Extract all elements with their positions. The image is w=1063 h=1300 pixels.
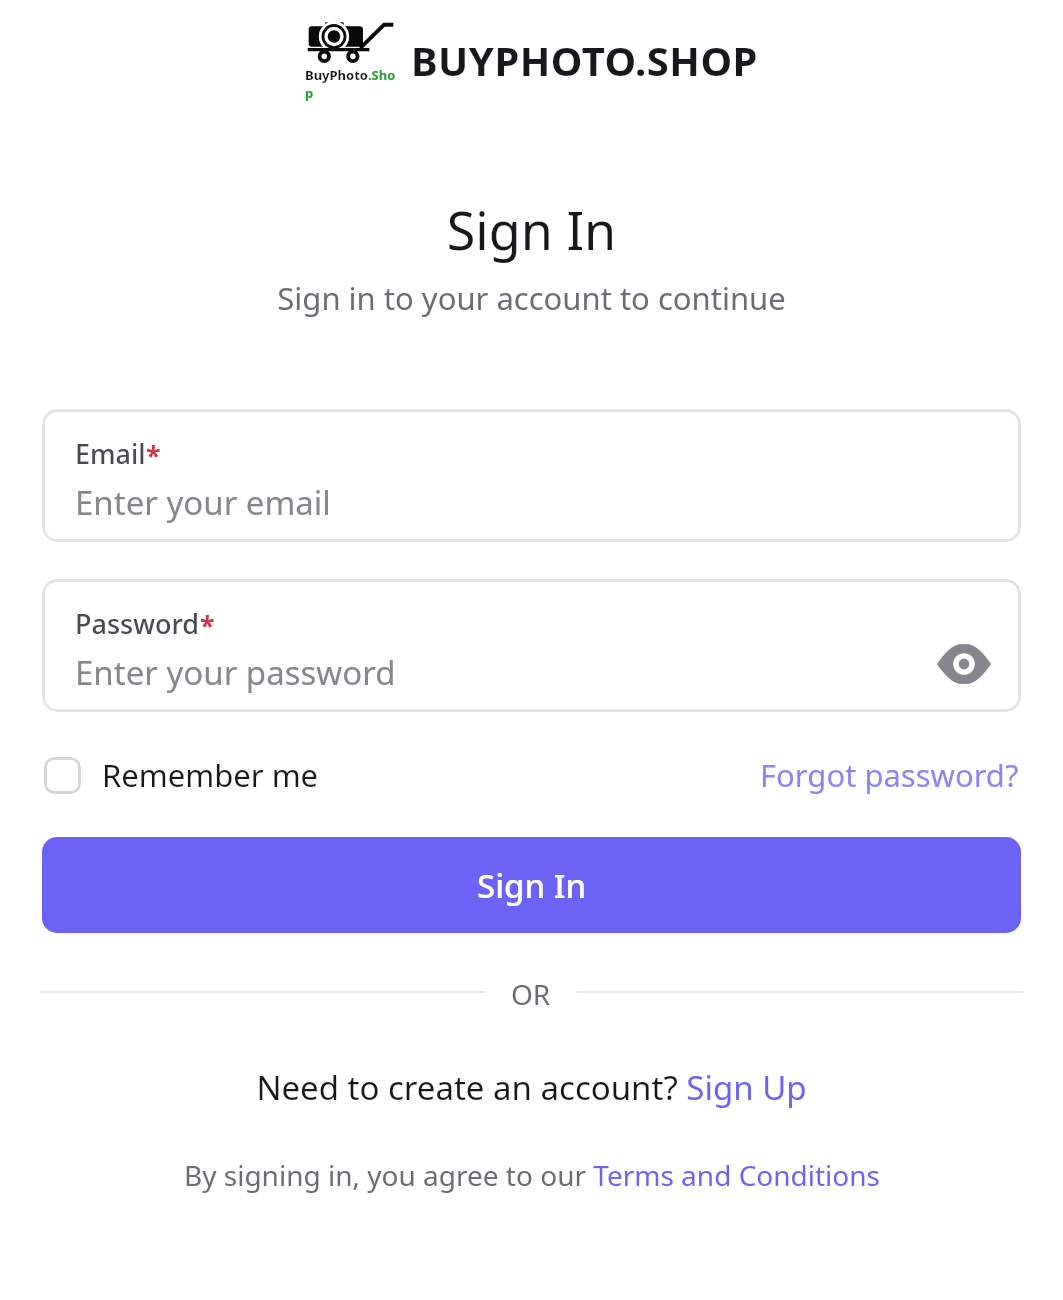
- button[interactable]: Password: [42, 579, 1021, 712]
- staticText: Enter your password: [75, 650, 396, 695]
- staticText: Forgot password?: [760, 754, 1019, 796]
- staticText: *: [146, 437, 161, 474]
- button[interactable]: Sign In: [42, 837, 1021, 933]
- button[interactable]: Forgot password?: [758, 750, 1021, 800]
- staticText: Enter your email: [75, 480, 331, 525]
- button[interactable]: By signing in, you agree to our Terms an…: [178, 1152, 886, 1198]
- button[interactable]: Show password: [933, 633, 995, 695]
- staticText: OR: [511, 975, 551, 1009]
- staticText: Sign In: [0, 194, 1063, 265]
- staticText: Sign in to your account to continue: [0, 277, 1063, 319]
- button[interactable]: Need to create an account? Sign Up: [250, 1061, 813, 1114]
- staticText: Sign In: [477, 863, 587, 908]
- staticText: BUYPHOTO.SHOP: [411, 33, 758, 87]
- staticText: Need to create an account? Sign Up: [256, 1065, 807, 1110]
- staticText: *: [200, 607, 215, 644]
- button[interactable]: Email: [42, 409, 1021, 542]
- staticText: Email: [75, 435, 146, 472]
- staticText: By signing in, you agree to our Terms an…: [184, 1156, 880, 1194]
- button[interactable]: Remember me: [42, 750, 321, 800]
- staticText: Password: [75, 605, 200, 642]
- staticText: BuyPhoto.Shop: [305, 66, 397, 102]
- staticText: Remember me: [102, 754, 319, 796]
